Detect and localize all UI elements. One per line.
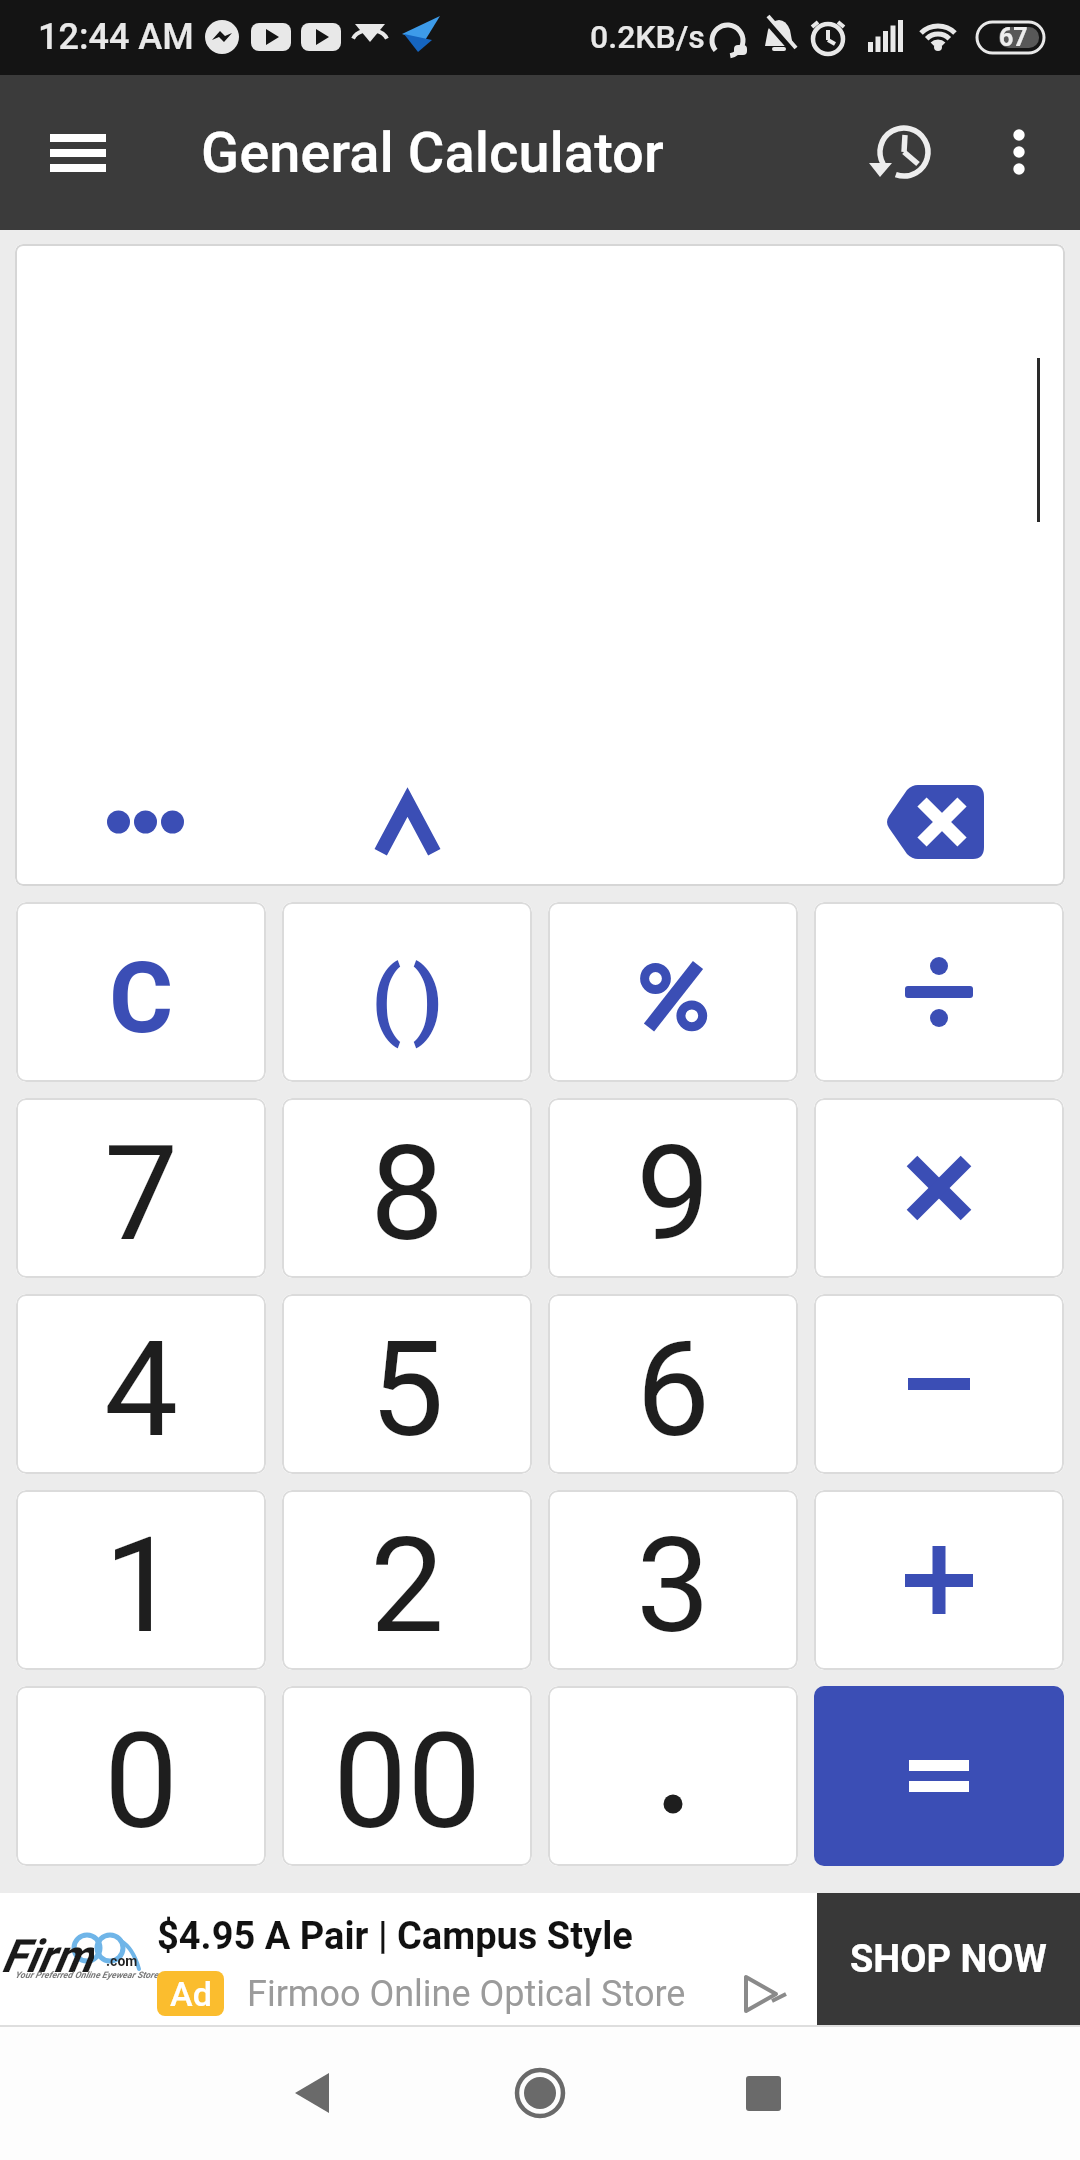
button[interactable]: 5 — [282, 1294, 532, 1474]
staticText: 8 — [370, 1117, 445, 1272]
button[interactable] — [814, 902, 1064, 1082]
staticText: .com — [106, 1953, 138, 1969]
button[interactable] — [548, 902, 798, 1082]
button[interactable] — [370, 790, 445, 855]
staticText: 67 — [999, 23, 1028, 52]
staticText: 6 — [636, 1313, 711, 1468]
staticText: 0.2KB/s — [590, 18, 705, 56]
staticText: Your Preferred Online Eyewear Store — [15, 1970, 159, 1981]
staticText: 3 — [636, 1509, 711, 1664]
button[interactable] — [979, 112, 1059, 192]
staticText: C — [109, 941, 174, 1056]
button[interactable] — [548, 1686, 798, 1866]
staticText: 12:44 AM — [38, 16, 194, 58]
button[interactable] — [30, 113, 126, 193]
staticText: 0 — [104, 1705, 179, 1860]
staticText: 2 — [370, 1509, 445, 1664]
button[interactable]: 1 — [16, 1490, 266, 1670]
button[interactable] — [862, 112, 942, 192]
staticText: Firmoo Online Optical Store — [247, 1973, 686, 2015]
button[interactable] — [723, 2053, 803, 2133]
staticText: ( — [371, 947, 402, 1050]
button[interactable]: 6 — [548, 1294, 798, 1474]
staticText: 9 — [636, 1117, 711, 1272]
button[interactable]: SHOP NOW — [817, 1893, 1080, 2025]
staticText: 5 — [370, 1313, 445, 1468]
button[interactable]: C — [16, 902, 266, 1082]
button[interactable] — [272, 2053, 352, 2133]
staticText: 7 — [104, 1117, 179, 1272]
staticText: 1 — [104, 1509, 179, 1664]
button[interactable]: 0 — [16, 1686, 266, 1866]
staticText: Ad — [170, 1974, 212, 2014]
button[interactable]: 4 — [16, 1294, 266, 1474]
button[interactable]: 8 — [282, 1098, 532, 1278]
button[interactable]: 7 — [16, 1098, 266, 1278]
staticText: 4 — [104, 1313, 179, 1468]
button[interactable] — [814, 1490, 1064, 1670]
button[interactable] — [95, 795, 196, 849]
button[interactable] — [885, 785, 984, 859]
staticText: Firm — [2, 1929, 94, 1973]
button[interactable] — [814, 1294, 1064, 1474]
button[interactable] — [500, 2053, 580, 2133]
staticText: ) — [412, 947, 444, 1050]
button[interactable]: 3 — [548, 1490, 798, 1670]
staticText: SHOP NOW — [850, 1937, 1047, 1982]
button[interactable]: Firm — [0, 1893, 1080, 2025]
button[interactable]: 9 — [548, 1098, 798, 1278]
button[interactable] — [814, 1686, 1064, 1866]
button[interactable]: ( — [282, 902, 532, 1082]
button[interactable]: 2 — [282, 1490, 532, 1670]
button[interactable] — [814, 1098, 1064, 1278]
staticText: 00 — [333, 1705, 482, 1860]
button[interactable]: 00 — [282, 1686, 532, 1866]
staticText: $4.95 A Pair | Campus Style — [157, 1914, 633, 1959]
staticText: General Calculator — [201, 120, 664, 186]
